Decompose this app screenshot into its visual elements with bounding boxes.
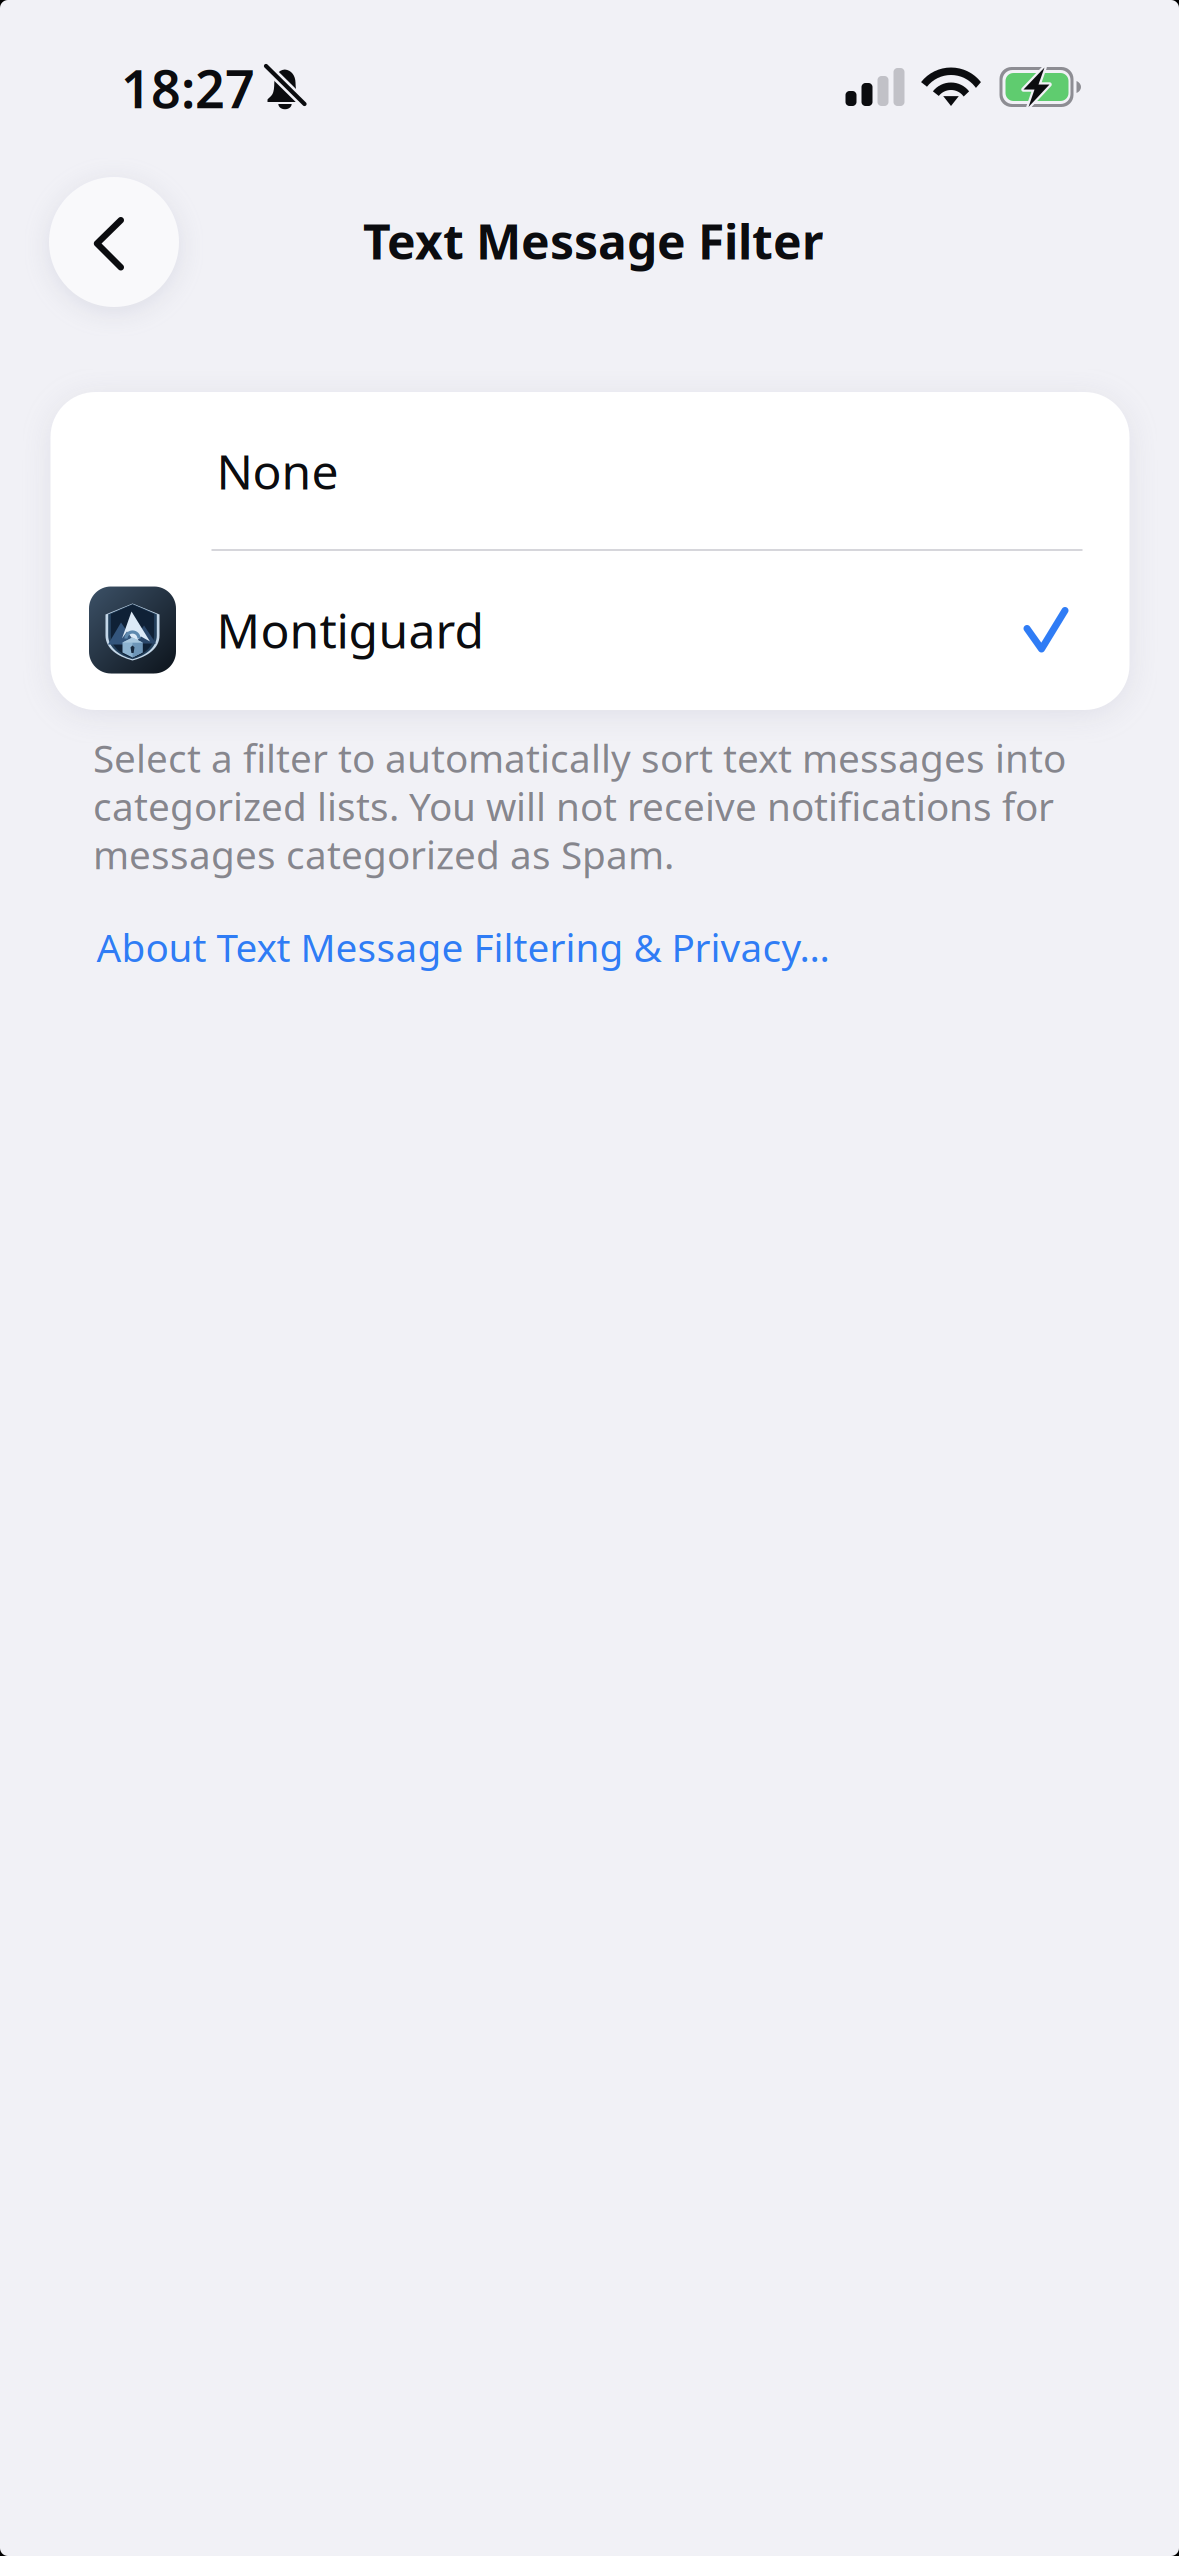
staticText: About Text Message Filtering & Privacy..… <box>96 921 829 973</box>
staticText: None <box>216 439 338 503</box>
staticText: Select a filter to automatically sort te… <box>93 732 1066 880</box>
staticText: Montiguard <box>216 598 484 662</box>
staticText: 18:27 <box>121 53 255 123</box>
staticText: Text Message Filter <box>363 209 823 273</box>
button[interactable]: About Text Message Filtering & Privacy..… <box>96 921 829 973</box>
button[interactable]: None <box>50 391 1129 550</box>
button[interactable]: Back <box>49 177 179 307</box>
button[interactable]: Montiguard <box>50 550 1129 709</box>
